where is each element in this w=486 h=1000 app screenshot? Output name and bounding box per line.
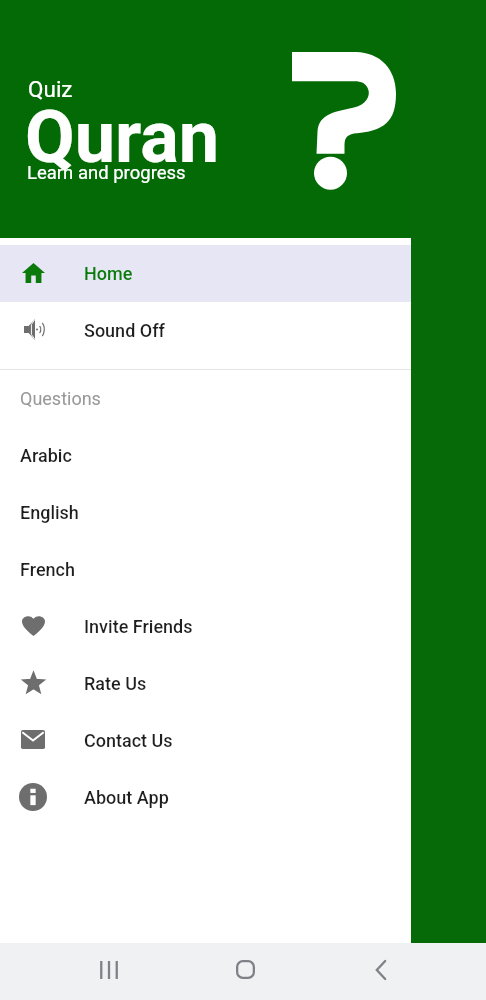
button[interactable]: Sound Off [0,302,411,359]
staticText: Quiz [28,76,73,102]
button[interactable]: Recent apps [77,941,141,998]
button[interactable]: Home [213,941,277,998]
staticText: About App [84,787,169,808]
staticText: Arabic [20,445,72,466]
staticText: Quran [25,95,220,179]
staticText: Sound Off [84,320,165,341]
button[interactable]: Home [0,245,411,302]
staticText: French [20,559,75,580]
staticText: Learn and progress [27,162,186,184]
staticText: Questions [20,388,101,409]
staticText: Home [84,263,133,284]
button[interactable]: Invite Friends [0,598,411,655]
button[interactable]: French [0,541,411,598]
button[interactable]: Contact Us [0,712,411,769]
staticText: Contact Us [84,730,173,751]
staticText: English [20,502,79,523]
staticText: Rate Us [84,673,147,694]
button[interactable]: Arabic [0,427,411,484]
button[interactable]: Rate Us [0,655,411,712]
button[interactable]: About App [0,769,411,826]
button[interactable]: English [0,484,411,541]
staticText: Invite Friends [84,616,193,637]
button[interactable]: Back [349,941,413,998]
